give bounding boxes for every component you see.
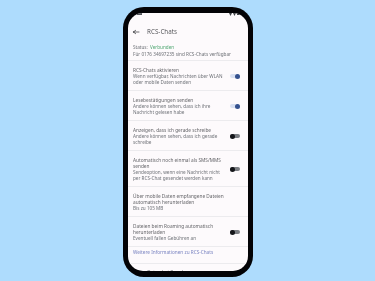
button[interactable]: Anzeigen, dass ich gerade schreibe	[128, 121, 248, 150]
staticText: Status:	[133, 44, 150, 50]
button[interactable]: Ein	[230, 102, 240, 110]
staticText: RCS-Chats aktivieren	[133, 67, 179, 73]
staticText: Dateien beim Roaming automatisch herunte…	[133, 223, 225, 235]
staticText: Sendeoption, wenn eine Nachricht nicht p…	[133, 169, 225, 181]
button[interactable]: Aus	[230, 132, 240, 140]
staticText: Andere können sehen, dass ich ihre Nachr…	[133, 103, 225, 115]
button[interactable]: Lesebestätigungen senden	[128, 91, 248, 120]
staticText: RCS-Chats	[147, 27, 178, 36]
button[interactable]: Ein	[230, 72, 240, 80]
staticText: Eventuell fallen Gebühren an	[133, 235, 197, 241]
staticText: Deine Daten bei Google	[133, 269, 187, 271]
staticText: Für 0176 34697235 sind RCS-Chats verfügb…	[133, 51, 231, 57]
staticText: Lesebestätigungen senden	[133, 97, 194, 103]
staticText: Anzeigen, dass ich gerade schreibe	[133, 127, 212, 133]
button[interactable]: Zurück	[130, 26, 141, 37]
staticText: Wenn verfügbar, Nachrichten über WLAN od…	[133, 73, 225, 85]
staticText: Über mobile Daten empfangene Dateien aut…	[133, 193, 240, 205]
button[interactable]: Weitere Informationen zu RCS-Chats	[128, 247, 248, 263]
button[interactable]: Über mobile Daten empfangene Dateien aut…	[128, 187, 248, 216]
button[interactable]: Dateien beim Roaming automatisch herunte…	[128, 217, 248, 246]
button[interactable]: Automatisch noch einmal als SMS/MMS send…	[128, 151, 248, 186]
staticText: Weitere Informationen zu RCS-Chats	[133, 249, 214, 255]
button[interactable]: Aus	[230, 228, 240, 236]
staticText: Automatisch noch einmal als SMS/MMS send…	[133, 157, 225, 169]
button[interactable]: RCS-Chats aktivieren	[128, 61, 248, 90]
staticText: Bis zu 105 MB	[133, 205, 164, 211]
staticText: Andere können sehen, dass ich gerade sch…	[133, 133, 225, 145]
button[interactable]: Aus	[230, 165, 240, 173]
staticText: Verbunden	[150, 44, 175, 50]
button[interactable]: Deine Daten bei Google	[128, 264, 248, 271]
